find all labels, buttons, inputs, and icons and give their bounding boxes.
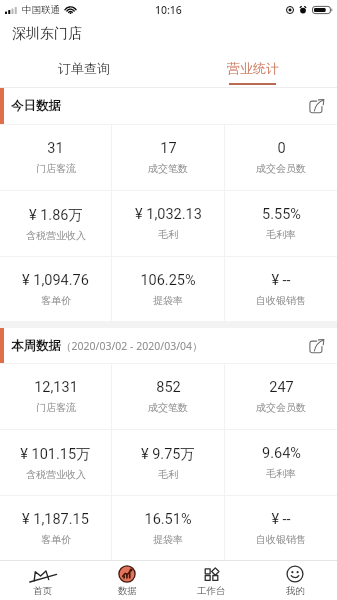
staticText: 12,131 xyxy=(34,379,78,396)
staticText: 含税营业收入 xyxy=(26,229,86,242)
staticText: 852 xyxy=(156,379,181,396)
button[interactable]: 31 xyxy=(0,125,111,190)
staticText: ¥ -- xyxy=(271,272,291,289)
staticText: ¥ -- xyxy=(271,511,291,528)
button[interactable]: 0 xyxy=(225,125,337,190)
staticText: ¥ 1,032.13 xyxy=(135,206,202,223)
button[interactable]: ¥ 1.86万 xyxy=(0,191,111,256)
button[interactable]: ¥ 1,187.15 xyxy=(0,496,111,560)
staticText: 10:16 xyxy=(155,3,182,17)
staticText: ¥ 1,187.15 xyxy=(22,511,89,528)
staticText: 提袋率 xyxy=(153,533,183,546)
staticText: 31 xyxy=(47,140,64,157)
staticText: 首页 xyxy=(33,585,52,597)
staticText: 工作台 xyxy=(197,585,226,597)
staticText: 毛利 xyxy=(158,228,178,241)
button[interactable]: 9.64% xyxy=(225,430,337,495)
button[interactable]: 16.51% xyxy=(112,496,224,560)
staticText: 含税营业收入 xyxy=(26,468,86,481)
button[interactable]: 数据 xyxy=(85,561,169,600)
button[interactable]: ¥ 1,094.76 xyxy=(0,257,111,321)
staticText: 成交笔数 xyxy=(148,401,188,414)
button[interactable]: ¥ 9.75万 xyxy=(112,430,224,495)
staticText: （2020/03/02 - 2020/03/04） xyxy=(61,339,203,353)
staticText: 门店客流 xyxy=(36,162,76,175)
staticText: 0 xyxy=(277,140,286,157)
staticText: 成交会员数 xyxy=(256,401,306,414)
button[interactable]: 订单查询 xyxy=(0,48,168,87)
staticText: 本周数据 xyxy=(11,338,61,354)
staticText: 数据 xyxy=(118,585,137,597)
button[interactable]: ¥ -- xyxy=(225,257,337,321)
staticText: 16.51% xyxy=(144,511,192,528)
staticText: 提袋率 xyxy=(153,294,183,307)
staticText: 毛利 xyxy=(158,468,178,481)
staticText: 自收银销售 xyxy=(256,294,306,307)
button[interactable]: ¥ 101.15万 xyxy=(0,430,111,495)
button[interactable]: ¥ -- xyxy=(225,496,337,560)
staticText: 我的 xyxy=(286,585,305,597)
staticText: 9.64% xyxy=(262,445,301,462)
staticText: 订单查询 xyxy=(58,60,110,76)
staticText: 5.55% xyxy=(262,206,301,223)
staticText: 成交会员数 xyxy=(256,162,306,175)
staticText: 成交笔数 xyxy=(148,162,188,175)
button[interactable]: 工作台 xyxy=(169,561,253,600)
staticText: 营业统计 xyxy=(227,60,279,76)
staticText: ¥ 9.75万 xyxy=(141,445,195,463)
staticText: 深圳东门店 xyxy=(12,25,82,43)
button[interactable]: 106.25% xyxy=(112,257,224,321)
button[interactable]: 247 xyxy=(225,364,337,429)
button[interactable]: 852 xyxy=(112,364,224,429)
staticText: 247 xyxy=(269,379,294,396)
staticText: ¥ 101.15万 xyxy=(20,445,91,463)
button[interactable]: 12,131 xyxy=(0,364,111,429)
staticText: 毛利率 xyxy=(266,467,296,480)
button[interactable]: 5.55% xyxy=(225,191,337,256)
staticText: 客单价 xyxy=(41,533,71,546)
button[interactable]: 分享 xyxy=(305,95,327,117)
button[interactable]: 营业统计 xyxy=(168,48,337,87)
staticText: 中国联通 xyxy=(22,4,60,16)
button[interactable]: 首页 xyxy=(0,561,85,600)
button[interactable]: 分享 xyxy=(305,335,327,357)
staticText: 门店客流 xyxy=(36,401,76,414)
staticText: 毛利率 xyxy=(266,228,296,241)
staticText: 自收银销售 xyxy=(256,533,306,546)
button[interactable]: ¥ 1,032.13 xyxy=(112,191,224,256)
button[interactable]: 我的 xyxy=(253,561,337,600)
staticText: ¥ 1,094.76 xyxy=(22,272,89,289)
staticText: 今日数据 xyxy=(11,98,61,114)
staticText: 客单价 xyxy=(41,294,71,307)
staticText: 17 xyxy=(160,140,177,157)
staticText: ¥ 1.86万 xyxy=(29,206,83,224)
staticText: 106.25% xyxy=(140,272,196,289)
button[interactable]: 17 xyxy=(112,125,224,190)
